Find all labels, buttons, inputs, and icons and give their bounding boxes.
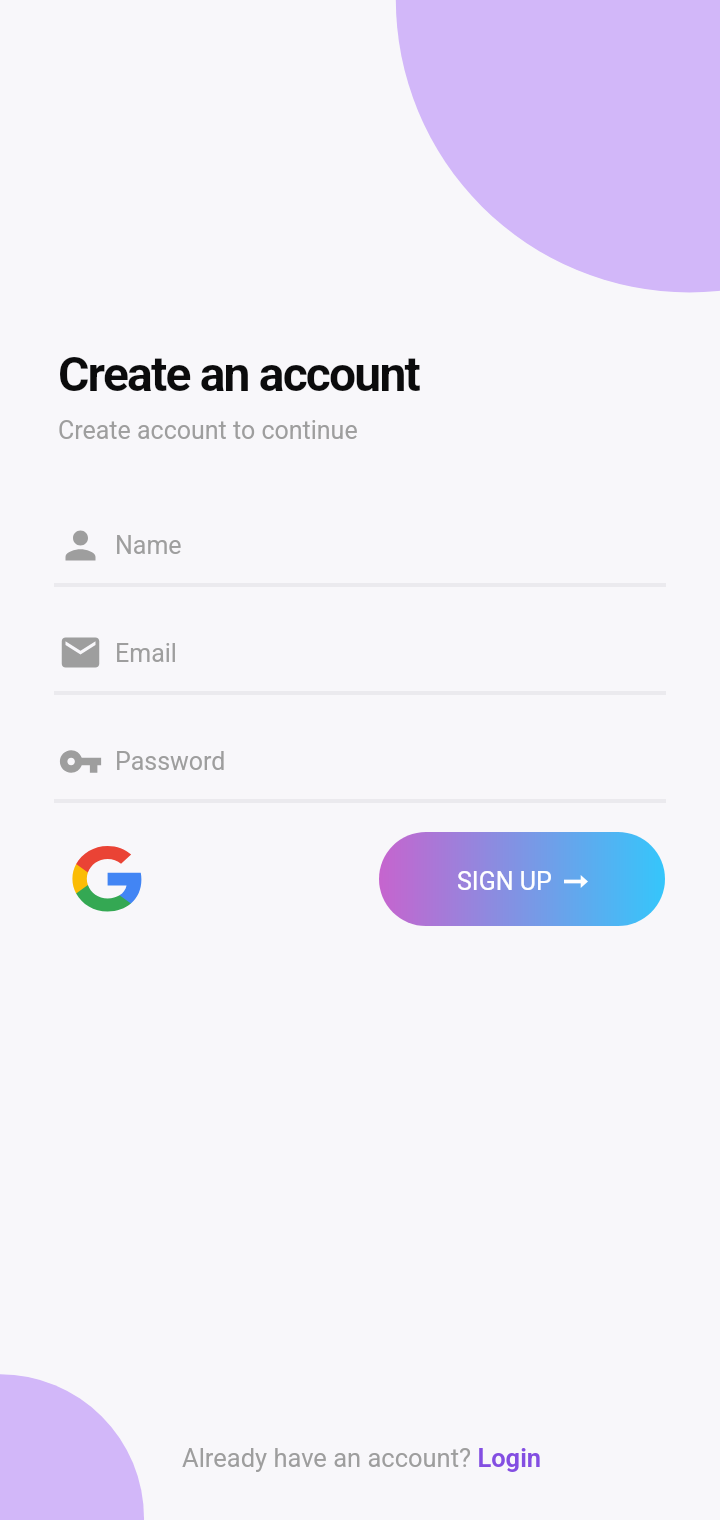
button[interactable]: Already have an account? Login xyxy=(182,1443,542,1473)
button[interactable]: Email xyxy=(54,613,666,695)
button[interactable]: SIGN UP xyxy=(379,832,665,926)
button[interactable]: Name xyxy=(54,505,666,587)
button[interactable]: Sign up with Google xyxy=(62,838,152,920)
staticText: SIGN UP xyxy=(457,867,552,896)
staticText: Email xyxy=(115,639,177,668)
staticText: Create account to continue xyxy=(58,416,358,445)
staticText: Create an account xyxy=(58,346,419,402)
staticText: Password xyxy=(115,747,226,776)
staticText: Already have an account? Login xyxy=(182,1443,542,1473)
button[interactable]: Password xyxy=(54,721,666,803)
staticText: Name xyxy=(115,531,182,560)
